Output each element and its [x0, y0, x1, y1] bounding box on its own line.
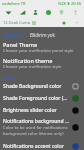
button[interactable]: Shade Foreground color (none): [0, 95, 84, 102]
staticText: Bildirim yok: [30, 32, 55, 38]
staticText: Themes: [3, 32, 22, 39]
staticText: Choose your notification panel style: [3, 48, 74, 54]
other: Expand: [74, 20, 79, 25]
button[interactable]: Shade Background color: [0, 83, 84, 90]
staticText: 12 Ocak Cuma: [3, 20, 31, 25]
button[interactable]: Quick setting: [31, 8, 40, 17]
staticText: Shade Foreground color (none): [3, 95, 69, 102]
button[interactable]: Panel Theme: [0, 41, 84, 54]
button[interactable]: Notifications background color: [0, 118, 84, 137]
staticText: Notifications accent color: [3, 143, 64, 150]
button[interactable]: Quick setting: [71, 8, 80, 17]
staticText: 20:56: [71, 1, 82, 6]
staticText: Colors: [3, 75, 19, 82]
staticText: vodafone TR: [2, 1, 26, 6]
button[interactable]: Quick setting: [18, 8, 27, 17]
staticText: Notifications background color: [3, 118, 69, 125]
button[interactable]: Notification theme: [0, 57, 84, 70]
button[interactable]: Quick setting: [57, 8, 66, 17]
staticText: Choose your notification style: [3, 64, 62, 70]
staticText: Notification theme: [3, 57, 53, 64]
staticText: Shade Background color: [3, 83, 62, 90]
staticText: %28: [58, 1, 66, 6]
button[interactable]: Notifications accent color: [0, 143, 84, 150]
staticText: Brightness slider color: [3, 107, 57, 114]
button[interactable]: Brightness slider color: [0, 107, 84, 114]
button[interactable]: Quick setting: [4, 8, 13, 17]
staticText: Color to be used for notifications backg…: [3, 125, 68, 137]
button[interactable]: Quick setting: [44, 8, 53, 17]
staticText: Panel Theme: [3, 41, 38, 48]
